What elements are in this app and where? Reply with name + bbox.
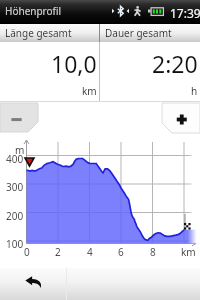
staticText: m <box>15 143 25 157</box>
staticText: h <box>191 84 198 98</box>
staticText: 8 <box>150 245 156 259</box>
staticText: 4 <box>87 245 93 259</box>
staticText: Länge gesamt <box>5 26 72 40</box>
staticText: km <box>82 84 97 98</box>
staticText: 0 <box>24 245 30 259</box>
staticText: km <box>181 245 196 259</box>
button[interactable]: Dauer gesamt <box>100 24 200 42</box>
staticText: 17:39 <box>170 5 200 21</box>
staticText: 10,0 <box>51 48 97 79</box>
staticText: 400 <box>6 152 24 166</box>
button[interactable]: Back <box>0 268 66 300</box>
staticText: Dauer gesamt <box>105 26 172 40</box>
button[interactable] <box>67 268 200 300</box>
button[interactable]: Zoom out <box>0 103 38 132</box>
staticText: 300 <box>6 180 24 194</box>
staticText: 200 <box>6 209 24 223</box>
staticText: 100 <box>6 237 24 251</box>
button[interactable]: Länge gesamt <box>0 24 99 42</box>
button[interactable]: Zoom in <box>162 103 200 133</box>
staticText: 6 <box>118 245 124 259</box>
staticText: 2 <box>55 245 61 259</box>
staticText: 2:20 <box>152 48 198 79</box>
staticText: Höhenprofil <box>5 4 62 18</box>
